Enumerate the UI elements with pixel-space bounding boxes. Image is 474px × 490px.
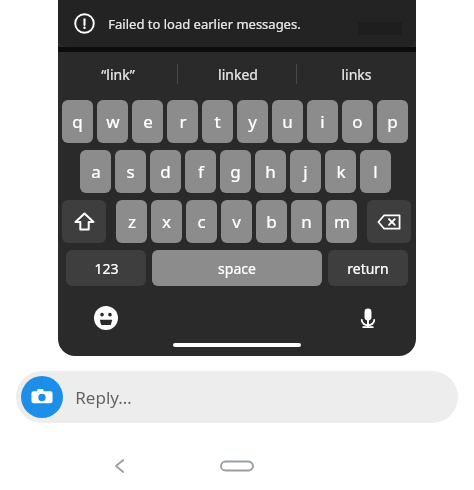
button[interactable]: Back bbox=[98, 444, 142, 488]
button[interactable]: z bbox=[116, 200, 147, 243]
staticText: p bbox=[387, 110, 398, 133]
staticText: a bbox=[91, 160, 101, 183]
button[interactable]: a bbox=[80, 150, 111, 193]
button[interactable]: d bbox=[150, 150, 181, 193]
staticText: h bbox=[265, 160, 276, 183]
button[interactable]: j bbox=[290, 150, 321, 193]
staticText: Reply… bbox=[75, 386, 132, 409]
staticText: i bbox=[320, 110, 325, 133]
button[interactable]: return bbox=[328, 250, 408, 286]
staticText: return bbox=[347, 259, 389, 278]
staticText: q bbox=[72, 110, 83, 133]
button[interactable]: 123 bbox=[66, 250, 146, 286]
staticText: y bbox=[248, 110, 257, 133]
button[interactable]: w bbox=[97, 100, 128, 143]
button[interactable]: q bbox=[62, 100, 93, 143]
staticText: s bbox=[126, 160, 135, 183]
button[interactable]: Camera bbox=[16, 371, 458, 423]
button[interactable]: l bbox=[360, 150, 391, 193]
button[interactable]: p bbox=[377, 100, 408, 143]
button[interactable]: u bbox=[272, 100, 303, 143]
staticText: m bbox=[334, 210, 350, 233]
staticText: x bbox=[162, 210, 171, 233]
button[interactable]: y bbox=[237, 100, 268, 143]
button[interactable]: f bbox=[185, 150, 216, 193]
button[interactable]: s bbox=[115, 150, 146, 193]
button[interactable]: x bbox=[151, 200, 182, 243]
button[interactable]: “link” bbox=[58, 52, 178, 96]
staticText: l bbox=[373, 160, 378, 183]
button[interactable]: space bbox=[152, 250, 322, 286]
button[interactable]: b bbox=[256, 200, 287, 243]
button[interactable]: Shift bbox=[62, 200, 106, 243]
button[interactable]: Failed to load earlier messages. bbox=[58, 0, 416, 47]
button[interactable]: g bbox=[220, 150, 251, 193]
staticText: Failed to load earlier messages. bbox=[108, 15, 301, 33]
staticText: v bbox=[232, 210, 241, 233]
button[interactable]: Camera bbox=[21, 376, 63, 418]
staticText: u bbox=[282, 110, 293, 133]
staticText: w bbox=[106, 110, 120, 133]
staticText: 123 bbox=[94, 259, 119, 278]
staticText: r bbox=[179, 110, 187, 133]
button[interactable]: c bbox=[186, 200, 217, 243]
staticText: c bbox=[197, 210, 206, 233]
staticText: d bbox=[160, 160, 171, 183]
staticText: t bbox=[214, 110, 221, 133]
staticText: b bbox=[266, 210, 277, 233]
staticText: o bbox=[352, 110, 363, 133]
button[interactable]: e bbox=[132, 100, 163, 143]
staticText: j bbox=[303, 160, 308, 183]
staticText: g bbox=[230, 160, 241, 183]
button[interactable]: i bbox=[307, 100, 338, 143]
staticText: “link” bbox=[101, 65, 135, 84]
button[interactable]: r bbox=[167, 100, 198, 143]
staticText: f bbox=[198, 160, 204, 183]
button[interactable]: h bbox=[255, 150, 286, 193]
staticText: space bbox=[218, 259, 256, 278]
button[interactable]: Backspace bbox=[367, 200, 411, 243]
button[interactable]: t bbox=[202, 100, 233, 143]
staticText: e bbox=[143, 110, 153, 133]
button[interactable]: Voice input bbox=[348, 298, 388, 338]
staticText: k bbox=[336, 160, 346, 183]
staticText: z bbox=[128, 210, 136, 233]
button[interactable]: v bbox=[221, 200, 252, 243]
button[interactable]: Emoji bbox=[86, 298, 126, 338]
button[interactable]: o bbox=[342, 100, 373, 143]
button[interactable]: m bbox=[326, 200, 357, 243]
staticText: links bbox=[341, 65, 372, 84]
button[interactable]: Home bbox=[215, 444, 259, 488]
button[interactable]: n bbox=[291, 200, 322, 243]
button[interactable]: linked bbox=[178, 52, 297, 96]
button[interactable]: links bbox=[297, 52, 416, 96]
staticText: linked bbox=[218, 65, 258, 84]
staticText: n bbox=[301, 210, 312, 233]
button[interactable]: k bbox=[325, 150, 356, 193]
